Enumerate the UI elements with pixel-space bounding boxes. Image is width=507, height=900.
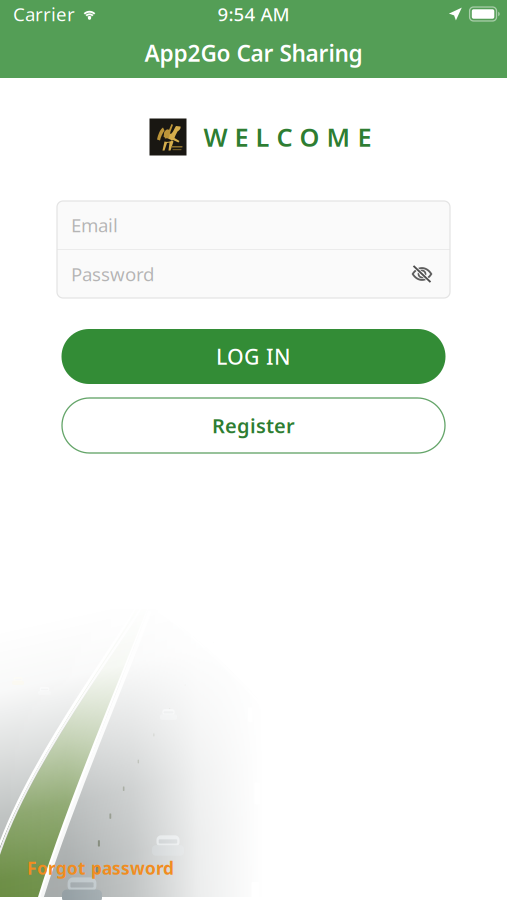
staticText: Register — [212, 412, 295, 439]
staticText: Password — [71, 262, 154, 286]
button[interactable]: Register — [62, 398, 445, 453]
button[interactable]: Show password — [404, 254, 440, 294]
button[interactable]: Forgot password — [27, 852, 174, 884]
staticText: Forgot password — [27, 856, 174, 879]
button[interactable]: LOG IN — [61, 329, 445, 384]
staticText: Email — [71, 213, 118, 237]
staticText: Carrier — [13, 2, 75, 26]
staticText: LOG IN — [216, 342, 291, 371]
staticText: App2Go Car Sharing — [144, 38, 362, 68]
staticText: 9:54 AM — [217, 2, 289, 26]
staticText: W E L C O M E — [203, 120, 371, 154]
